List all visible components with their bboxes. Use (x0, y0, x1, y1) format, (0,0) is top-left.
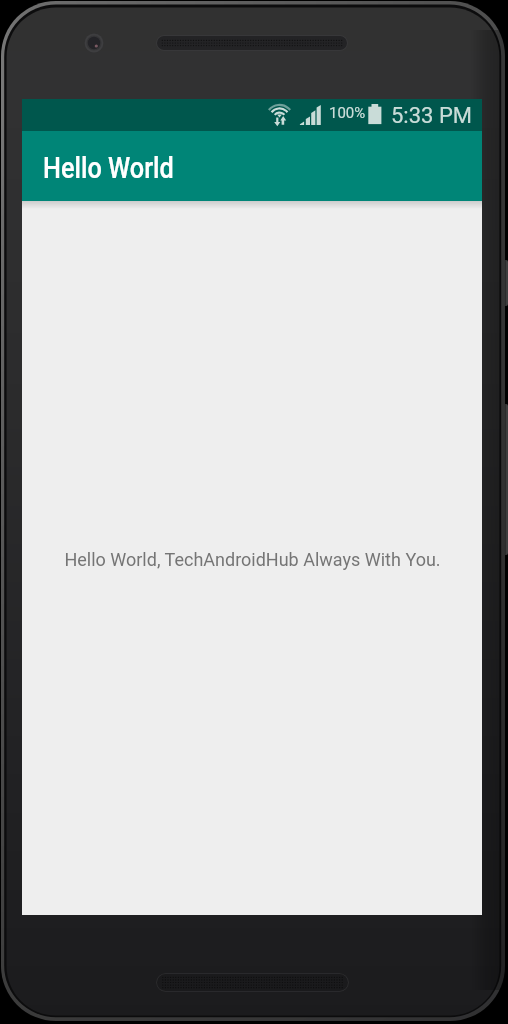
staticText: 100% (329, 104, 366, 122)
button[interactable]: Hello World (22, 131, 482, 201)
staticText: 5:33 PM (391, 103, 472, 129)
staticText: Hello World (43, 151, 174, 185)
staticText: Hello World, TechAndroidHub Always With … (64, 549, 441, 570)
